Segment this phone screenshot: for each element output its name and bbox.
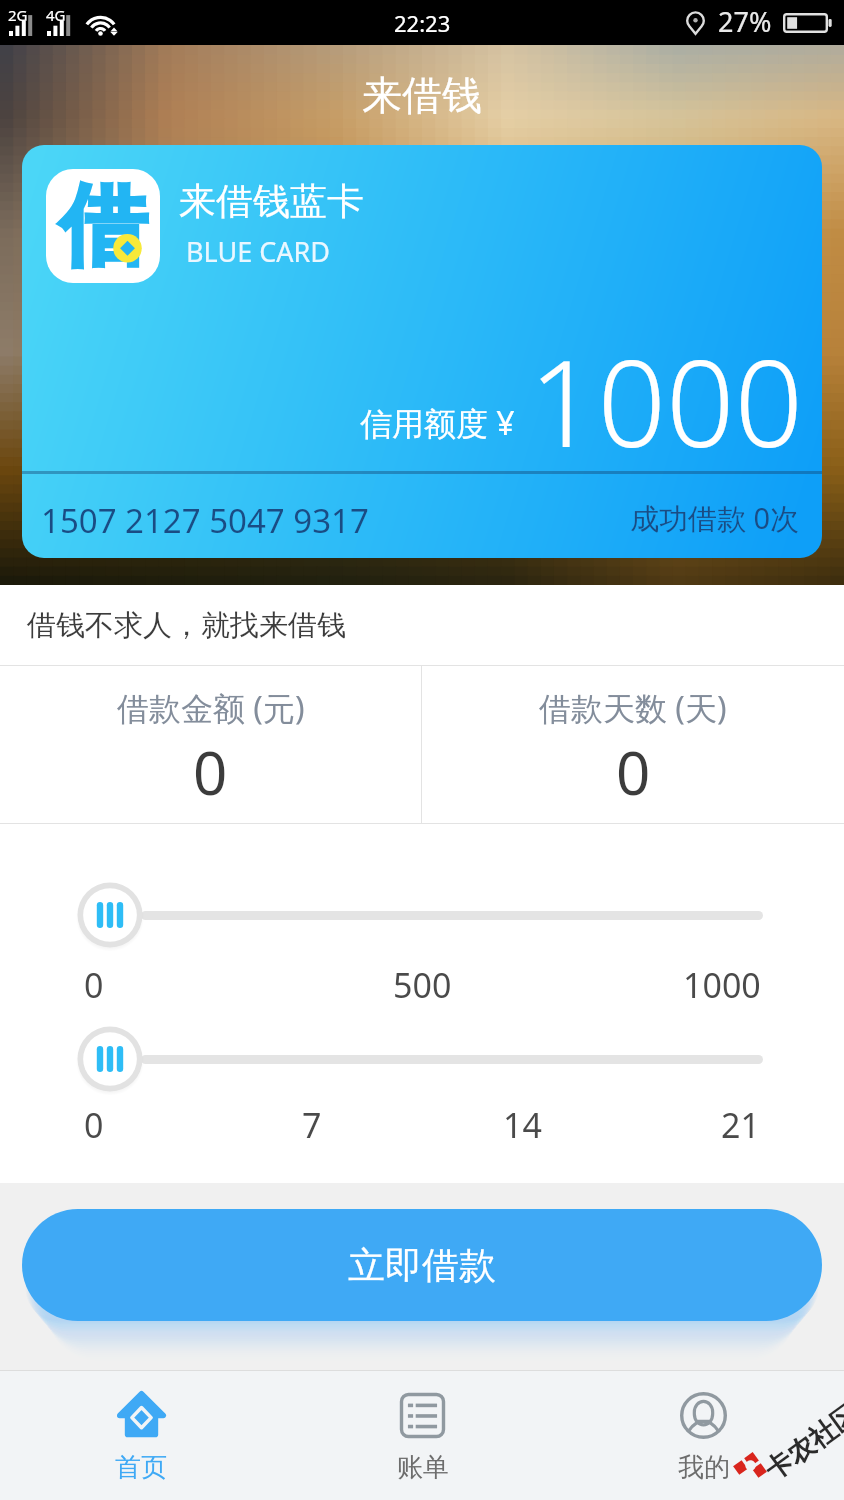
staticText: 我的 [678, 1451, 730, 1484]
staticText: 500 [393, 962, 452, 1008]
button[interactable]: 借 [22, 145, 822, 558]
staticText: BLUE CARD [186, 233, 331, 270]
button[interactable]: 我的 [563, 1371, 844, 1500]
staticText: 借钱不求人，就找来借钱 [27, 607, 346, 644]
staticText: 7 [302, 1102, 322, 1148]
staticText: 来借钱蓝卡 [179, 178, 364, 225]
staticText: 22:23 [394, 8, 451, 38]
staticText: 27% [718, 3, 772, 40]
staticText: 0 [84, 1102, 104, 1148]
staticText: 立即借款 [348, 1242, 496, 1289]
staticText: 1507 2127 5047 9317 [41, 498, 369, 543]
staticText: 借款金额 (元) [117, 686, 305, 730]
staticText: 账单 [397, 1451, 449, 1484]
staticText: 0 [193, 731, 228, 813]
staticText: 1000 [529, 319, 804, 449]
button[interactable]: 立即借款 [22, 1209, 822, 1321]
button[interactable]: 借款金额 (元) [0, 666, 421, 823]
button[interactable] [76, 881, 144, 949]
staticText: 0 [84, 962, 104, 1008]
button[interactable] [76, 1025, 144, 1093]
staticText: 借 [59, 171, 147, 282]
staticText: 21 [721, 1102, 760, 1148]
staticText: 借款天数 (天) [539, 686, 727, 730]
button[interactable]: 首页 [0, 1371, 282, 1500]
staticText: 首页 [115, 1451, 167, 1484]
staticText: 14 [503, 1102, 542, 1148]
staticText: 2G [8, 5, 28, 25]
staticText: 卡农社区 [758, 1396, 844, 1487]
staticText: 4G [46, 5, 66, 25]
button[interactable]: 借款天数 (天) [422, 666, 844, 823]
staticText: 1000 [683, 962, 761, 1008]
staticText: 来借钱 [0, 70, 844, 120]
button[interactable]: 账单 [282, 1371, 563, 1500]
staticText: 0 [616, 731, 651, 813]
button[interactable]: 借钱不求人，就找来借钱 [0, 585, 844, 665]
staticText: 成功借款 0次 [630, 498, 800, 538]
staticText: 信用额度 ¥ [360, 401, 515, 445]
